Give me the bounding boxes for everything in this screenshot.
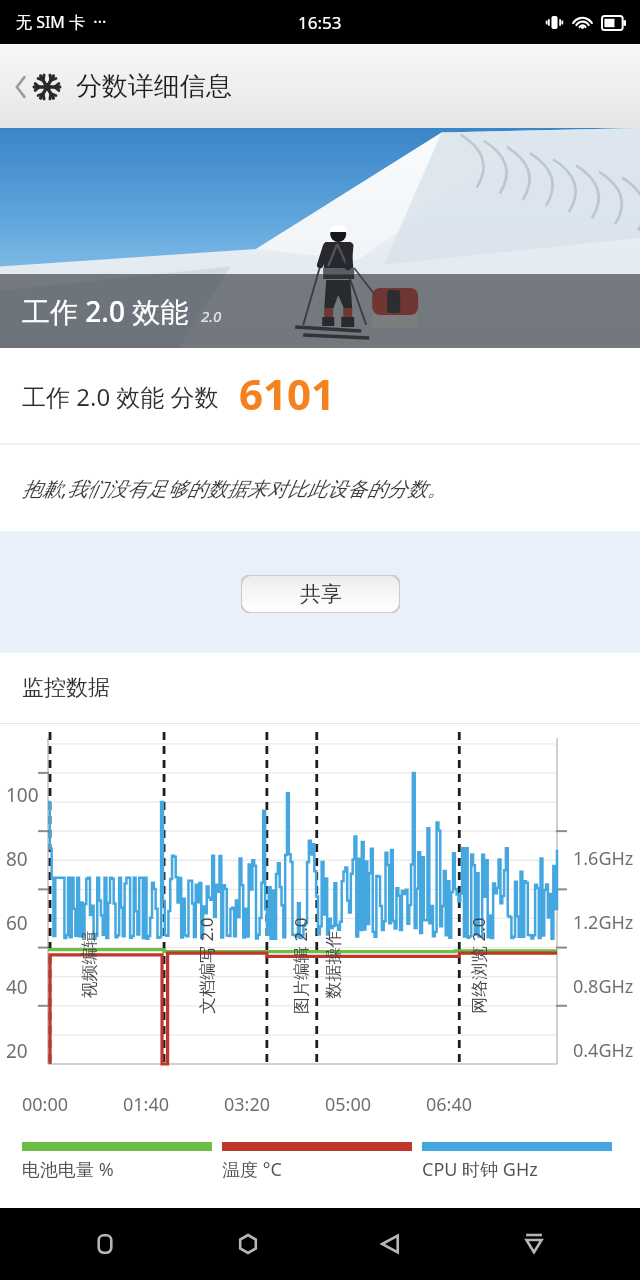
staticText: 共享 — [300, 581, 342, 607]
staticText: 01:40 — [123, 1092, 170, 1117]
staticText: 温度 °C — [222, 1157, 282, 1182]
staticText: 80 — [6, 846, 28, 872]
button[interactable]: 工作 2.0 效能 分数 — [0, 348, 640, 443]
staticText: 图片编辑 2.0 — [289, 917, 312, 1014]
staticText: 20 — [6, 1038, 28, 1064]
staticText: 0.4GHz — [573, 1038, 634, 1063]
button[interactable]: 共享 — [241, 575, 400, 613]
staticText: 60 — [6, 910, 28, 936]
staticText: 视频编辑 — [78, 930, 99, 998]
button[interactable]: CPU 时钟 GHz — [422, 1142, 612, 1182]
button[interactable]: Hide keyboard — [505, 1215, 563, 1273]
staticText: 网络浏览 2.0 — [467, 917, 490, 1014]
staticText: 100 — [6, 782, 39, 808]
button[interactable]: 工作 2.0 效能 — [0, 128, 640, 348]
staticText: 40 — [6, 974, 28, 1000]
staticText: 数据操作 — [322, 930, 343, 998]
staticText: 2.0 — [201, 306, 222, 326]
staticText: 无 SIM 卡 ··· — [16, 11, 107, 33]
staticText: CPU 时钟 GHz — [422, 1157, 538, 1182]
staticText: 16:53 — [298, 11, 342, 34]
staticText: 工作 2.0 效能 分数 — [22, 380, 219, 413]
button[interactable]: Back to results — [8, 62, 238, 111]
staticText: 抱歉,我们没有足够的数据来对比此设备的分数。 — [22, 475, 448, 502]
staticText: 05:00 — [325, 1092, 372, 1117]
staticText: 电池电量 % — [22, 1157, 114, 1182]
button[interactable]: Back — [362, 1215, 420, 1273]
button[interactable]: Home — [219, 1215, 277, 1273]
button[interactable]: 抱歉,我们没有足够的数据来对比此设备的分数。 — [0, 445, 640, 531]
staticText: 文档编写 2.0 — [195, 917, 218, 1014]
staticText: 1.6GHz — [573, 846, 634, 871]
button[interactable]: 温度 °C — [222, 1142, 412, 1182]
staticText: 0.8GHz — [573, 974, 634, 999]
staticText: 03:20 — [224, 1092, 271, 1117]
staticText: 分数详细信息 — [76, 70, 232, 103]
button[interactable]: 电池电量 % — [22, 1142, 212, 1182]
staticText: 06:40 — [426, 1092, 473, 1117]
staticText: 6101 — [239, 365, 336, 422]
staticText: 监控数据 — [22, 674, 110, 702]
button[interactable]: Recent apps — [76, 1215, 134, 1273]
staticText: 1.2GHz — [573, 910, 634, 935]
staticText: 工作 2.0 效能 — [22, 292, 189, 330]
staticText: 00:00 — [22, 1092, 69, 1117]
